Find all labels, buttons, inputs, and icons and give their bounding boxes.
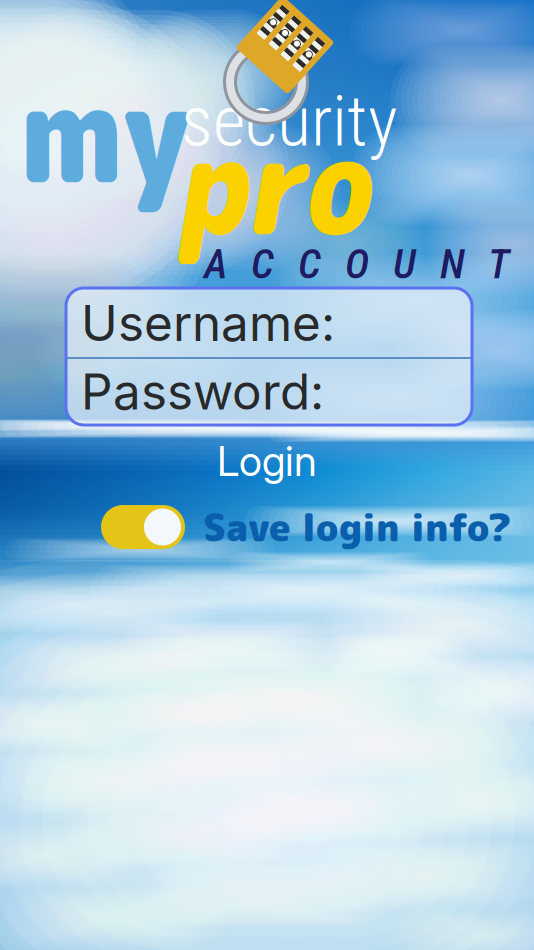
button[interactable]: Save login info? [101,501,511,553]
staticText: ACCOUNT [204,240,509,288]
staticText: Username: [81,293,335,353]
staticText: Login [217,436,317,486]
staticText: my [19,36,215,226]
staticText: Password: [81,362,324,421]
staticText: pro [175,88,411,278]
staticText: security [181,80,398,163]
button[interactable]: Password: [69,359,469,424]
button[interactable]: Login [187,438,347,484]
staticText: Save login info? [203,501,511,553]
button[interactable]: Username: [69,289,469,357]
